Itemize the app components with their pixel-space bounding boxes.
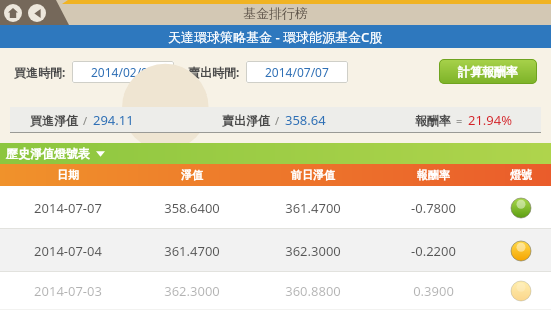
- staticText: 360.8800: [285, 282, 341, 300]
- staticText: /: [83, 113, 88, 128]
- button[interactable]: 2014/07/07: [246, 61, 348, 83]
- staticText: 賣出淨值: [222, 113, 270, 128]
- staticText: 361.4700: [285, 199, 341, 217]
- staticText: 21.94%: [468, 111, 513, 129]
- staticText: 0.3900: [413, 282, 454, 300]
- staticText: 2014/07/07: [265, 64, 329, 80]
- staticText: -0.7800: [411, 199, 456, 217]
- staticText: 362.3000: [285, 242, 341, 260]
- staticText: 淨值: [181, 168, 203, 182]
- button[interactable]: 歷史淨值燈號表: [0, 143, 551, 164]
- staticText: 日期: [57, 168, 79, 182]
- staticText: 報酬率: [417, 168, 450, 182]
- button[interactable]: 2014-07-03: [0, 272, 551, 310]
- staticText: 358.64: [285, 111, 326, 129]
- staticText: 天達環球策略基金 - 環球能源基金C股: [168, 28, 383, 46]
- button[interactable]: Home: [4, 4, 22, 22]
- staticText: =: [456, 113, 463, 128]
- staticText: 歷史淨值燈號表: [6, 146, 90, 161]
- button[interactable]: 計算報酬率: [439, 59, 537, 84]
- staticText: 買進淨值: [30, 113, 78, 128]
- staticText: 買進時間:: [14, 64, 66, 80]
- staticText: 2014-07-04: [34, 242, 102, 260]
- staticText: 賣出時間:: [188, 64, 240, 80]
- staticText: 294.11: [93, 111, 134, 129]
- staticText: -0.2200: [411, 242, 456, 260]
- button[interactable]: 2014-07-04: [0, 229, 551, 272]
- button[interactable]: Back: [28, 4, 46, 22]
- staticText: 燈號: [510, 168, 532, 182]
- button[interactable]: 2014/02/06: [72, 61, 174, 83]
- staticText: 2014-07-07: [34, 199, 102, 217]
- staticText: 362.3000: [164, 282, 220, 300]
- staticText: 報酬率: [415, 113, 451, 128]
- staticText: 2014-07-03: [34, 282, 102, 300]
- staticText: 計算報酬率: [458, 64, 518, 79]
- staticText: 358.6400: [164, 199, 220, 217]
- staticText: /: [275, 113, 280, 128]
- staticText: 2014/02/06: [91, 64, 155, 80]
- button[interactable]: 2014-07-07: [0, 186, 551, 229]
- staticText: 前日淨值: [291, 168, 335, 182]
- staticText: 361.4700: [164, 242, 220, 260]
- staticText: 基金排行榜: [243, 5, 308, 21]
